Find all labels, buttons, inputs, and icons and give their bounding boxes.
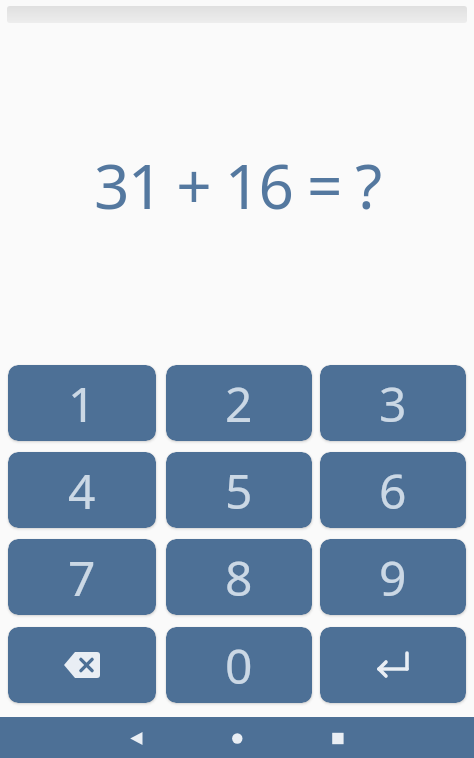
button[interactable]: 6: [320, 452, 466, 528]
button[interactable]: 5: [166, 452, 312, 528]
staticText: 0: [225, 633, 253, 698]
button[interactable]: 3: [320, 365, 466, 441]
staticText: 3: [379, 371, 407, 436]
button[interactable]: 4: [8, 452, 156, 528]
button[interactable]: 8: [166, 539, 312, 615]
staticText: 4: [68, 458, 96, 523]
staticText: 9: [379, 545, 407, 610]
staticText: 5: [225, 458, 253, 523]
button[interactable]: 9: [320, 539, 466, 615]
staticText: 2: [225, 371, 253, 436]
button[interactable]: 1: [8, 365, 156, 441]
button[interactable]: 2: [166, 365, 312, 441]
staticText: 6: [379, 458, 407, 523]
button[interactable]: 0: [166, 627, 312, 703]
staticText: 7: [68, 545, 96, 610]
staticText: 31 + 16 = ?: [94, 143, 381, 227]
button[interactable]: 7: [8, 539, 156, 615]
button[interactable]: [8, 627, 156, 703]
button[interactable]: [320, 627, 466, 703]
staticText: 8: [225, 545, 253, 610]
staticText: 1: [68, 371, 96, 436]
